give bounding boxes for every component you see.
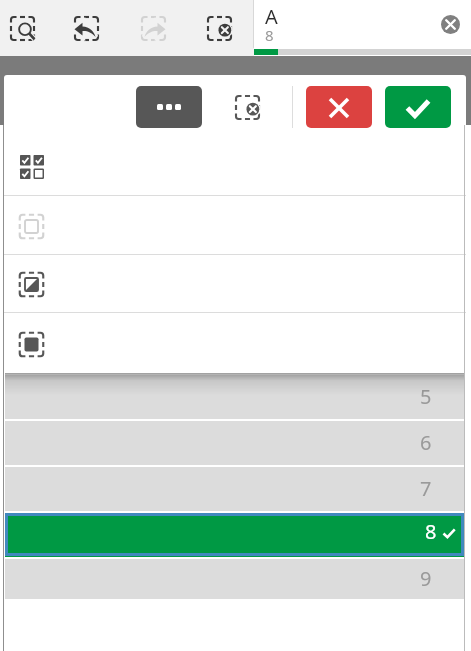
button[interactable]: 6 (5, 421, 464, 465)
button[interactable]: Invert selection (4, 255, 466, 312)
button[interactable]: Undo (64, 6, 108, 50)
button[interactable]: Clear selection (197, 6, 241, 50)
staticText: A (265, 3, 278, 30)
button[interactable]: 5 (5, 375, 464, 419)
staticText: 7 (420, 475, 432, 502)
button[interactable]: Confirm (385, 86, 451, 128)
staticText: 8 (265, 25, 274, 45)
staticText: 8 (425, 518, 437, 545)
button[interactable]: Search selection (0, 6, 44, 50)
button[interactable]: Clear selection (226, 86, 268, 128)
staticText: 9 (420, 565, 432, 592)
staticText: 6 (420, 429, 432, 456)
button[interactable]: 8 (5, 512, 464, 558)
button[interactable]: Redo (131, 6, 175, 50)
button[interactable]: More options (136, 86, 202, 128)
staticText: 5 (420, 383, 432, 410)
button[interactable]: 9 (5, 559, 464, 599)
button[interactable]: Cancel (306, 86, 372, 128)
button[interactable]: Deselect all (4, 196, 466, 254)
button[interactable]: Close tab (435, 9, 465, 39)
button[interactable]: Select all (4, 136, 466, 195)
button[interactable]: Fill selection (4, 313, 466, 373)
